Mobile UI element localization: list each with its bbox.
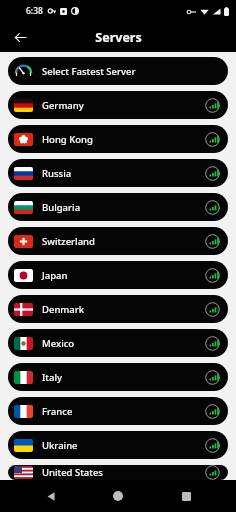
button[interactable]: Home [101,480,135,512]
staticText: 6:38 [26,5,43,17]
button[interactable]: Russia [8,159,228,187]
button[interactable]: Ukraine [8,431,228,459]
button[interactable]: Back [34,480,68,512]
button[interactable]: United States [8,465,228,480]
button[interactable]: Recent apps [169,480,203,512]
button[interactable]: France [8,397,228,425]
button[interactable]: Bulgaria [8,193,228,221]
button[interactable]: Hong Kong [8,125,228,153]
staticText: United States [42,466,103,479]
button[interactable]: Mexico [8,329,228,357]
button[interactable]: Italy [8,363,228,391]
staticText: France [42,405,73,418]
button[interactable]: Select Fastest Server [8,57,228,85]
staticText: Russia [42,167,72,180]
staticText: Ukraine [42,439,78,452]
button[interactable]: Japan [8,261,228,289]
button[interactable]: Switzerland [8,227,228,255]
staticText: Servers [95,29,142,46]
staticText: Japan [42,269,68,282]
staticText: Germany [42,99,84,112]
staticText: Select Fastest Server [42,65,136,78]
staticText: Hong Kong [42,133,93,146]
button[interactable]: Back [6,23,34,51]
staticText: Italy [42,371,63,384]
staticText: Mexico [42,337,75,350]
button[interactable]: Denmark [8,295,228,323]
staticText: Bulgaria [42,201,81,214]
button[interactable]: Germany [8,91,228,119]
staticText: Switzerland [42,235,95,248]
staticText: Denmark [42,303,85,316]
